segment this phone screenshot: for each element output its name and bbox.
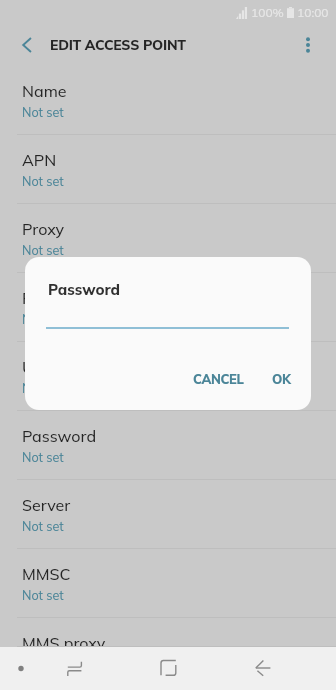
button[interactable]: Navigate up: [2, 24, 52, 66]
staticText: Username: [22, 357, 99, 377]
button[interactable]: Proxy: [0, 204, 336, 273]
staticText: Password: [22, 426, 97, 446]
staticText: 100%: [251, 5, 284, 20]
button[interactable]: Server: [0, 480, 336, 549]
staticText: Not set: [22, 449, 64, 465]
staticText: OK: [272, 371, 291, 387]
staticText: APN: [22, 150, 57, 170]
staticText: Not set: [22, 656, 64, 672]
staticText: Server: [22, 495, 71, 515]
staticText: MMSC: [22, 564, 71, 584]
button[interactable]: Password: [0, 411, 336, 480]
button[interactable]: CANCEL: [184, 364, 253, 394]
staticText: Not set: [22, 587, 64, 603]
staticText: Proxy: [22, 219, 65, 239]
staticText: Not set: [22, 518, 64, 534]
staticText: Not set: [22, 173, 64, 189]
staticText: Not set: [22, 311, 64, 327]
staticText: Name: [22, 81, 67, 101]
button[interactable]: Show keyboard: [9, 647, 33, 690]
button[interactable]: Port: [0, 273, 336, 342]
staticText: CANCEL: [193, 371, 244, 387]
button[interactable]: OK: [263, 364, 300, 394]
staticText: Port: [22, 288, 54, 308]
staticText: Not set: [22, 242, 64, 258]
staticText: 10:00: [297, 5, 329, 20]
staticText: Not set: [22, 104, 64, 120]
staticText: MMS proxy: [22, 633, 106, 653]
button[interactable]: Username: [0, 342, 336, 411]
button[interactable]: MMS proxy: [0, 618, 336, 647]
staticText: Not set: [22, 380, 64, 396]
staticText: EDIT ACCESS POINT: [50, 36, 186, 54]
button[interactable]: Name: [0, 66, 336, 135]
staticText: Password: [48, 280, 121, 299]
button[interactable]: MMSC: [0, 549, 336, 618]
button[interactable]: APN: [0, 135, 336, 204]
button[interactable]: More options: [288, 24, 328, 66]
